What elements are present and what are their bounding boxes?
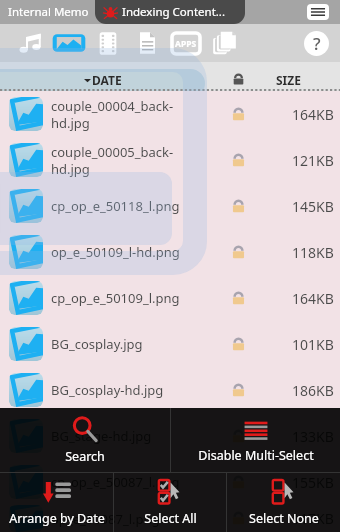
staticText: 155KB <box>292 473 334 492</box>
button[interactable]: op_e_50087_l.png <box>0 505 340 532</box>
staticText: APPS <box>175 38 197 50</box>
button[interactable]: SIZE <box>205 62 340 91</box>
staticText: cp_op_e_50109_l.png <box>51 289 231 307</box>
button[interactable]: Documents <box>132 24 162 62</box>
staticText: couple_00004_back- hd.jpg <box>51 97 231 132</box>
button[interactable]: Video <box>93 24 123 62</box>
staticText: Internal Memo <box>8 4 89 20</box>
button[interactable]: BG_cosplay.jpg <box>0 321 340 367</box>
staticText: op_e_50087_l.png <box>51 510 231 528</box>
staticText: 101KB <box>292 335 334 354</box>
staticText: BG_cosplay.jpg <box>51 335 231 353</box>
staticText: 186KB <box>292 381 334 400</box>
staticText: couple_00005_back- hd.jpg <box>51 143 231 178</box>
button[interactable]: cp_op_e_50118_l.png <box>0 183 340 229</box>
button[interactable]: Select All <box>114 473 226 532</box>
button[interactable]: Music <box>14 24 48 62</box>
staticText: ? <box>313 32 321 55</box>
staticText: Select All <box>144 510 197 527</box>
staticText: 133KB <box>292 427 334 446</box>
button[interactable]: Indexing Content... <box>95 0 245 24</box>
staticText: 164KB <box>292 105 334 124</box>
staticText: 117KB <box>292 509 334 528</box>
staticText: Arrange by Date <box>9 510 105 527</box>
staticText: cp_op_e_50118_l.png <box>51 197 231 215</box>
button[interactable]: couple_00005_back- hd.jpg <box>0 137 340 183</box>
button[interactable]: Help <box>304 31 329 56</box>
staticText: op_e_50109_l-hd.png <box>51 243 231 261</box>
button[interactable]: Search <box>0 408 170 472</box>
button[interactable]: BG_stage-hd.jpg <box>0 413 340 459</box>
button[interactable]: Images <box>51 24 87 62</box>
button[interactable]: All files <box>208 24 240 62</box>
staticText: 145KB <box>292 197 334 216</box>
staticText: 164KB <box>292 289 334 308</box>
staticText: Select None <box>249 510 319 527</box>
staticText: 118KB <box>292 243 334 262</box>
staticText: DATE <box>92 72 122 88</box>
staticText: Search <box>65 448 105 465</box>
staticText: Indexing Content... <box>122 4 226 20</box>
button[interactable]: cp_op_e_50087_l.png <box>0 459 340 505</box>
button[interactable]: Arrange by Date <box>0 473 113 532</box>
button[interactable]: Menu <box>307 4 329 20</box>
button[interactable]: BG_cosplay-hd.jpg <box>0 367 340 413</box>
staticText: BG_stage-hd.jpg <box>51 427 231 445</box>
button[interactable]: op_e_50109_l-hd.png <box>0 229 340 275</box>
staticText: SIZE <box>276 72 301 88</box>
button[interactable]: Apps <box>170 24 202 62</box>
button[interactable]: cp_op_e_50109_l.png <box>0 275 340 321</box>
button[interactable]: couple_00004_back- hd.jpg <box>0 91 340 137</box>
staticText: cp_op_e_50087_l.png <box>51 473 231 491</box>
staticText: Disable Multi-Select <box>198 447 314 464</box>
button[interactable]: Select None <box>227 473 340 532</box>
staticText: 121KB <box>292 151 334 170</box>
button[interactable]: Disable Multi-Select <box>171 408 340 472</box>
staticText: BG_cosplay-hd.jpg <box>51 381 231 399</box>
button[interactable]: DATE <box>0 62 205 91</box>
